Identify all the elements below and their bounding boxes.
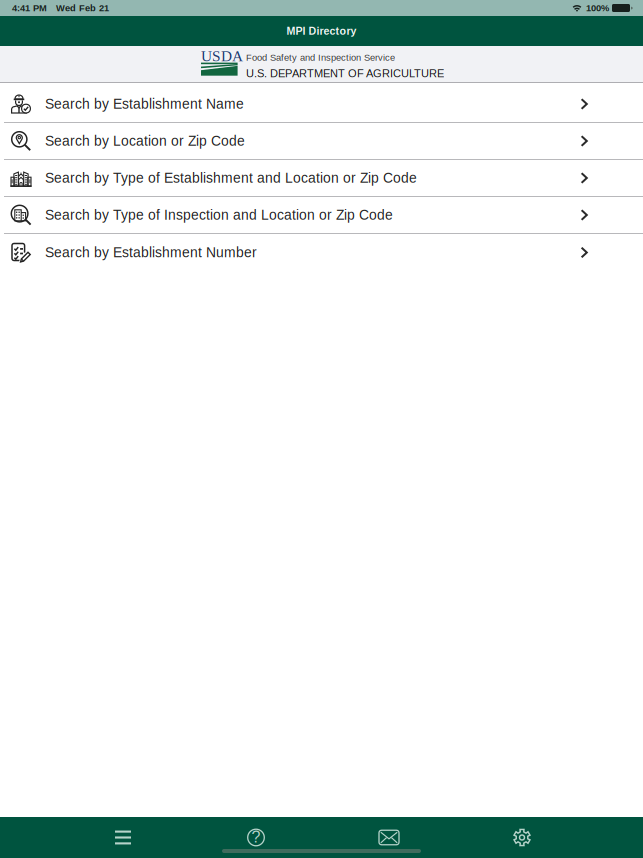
staticText: Search by Type of Inspection and Locatio… [45, 207, 393, 223]
button[interactable]: Contact [322, 817, 455, 858]
staticText: Search by Location or Zip Code [45, 133, 245, 149]
staticText: Food Safety and Inspection Service [246, 52, 395, 63]
staticText: Wed Feb 21 [47, 3, 109, 13]
staticText: U.S. DEPARTMENT OF AGRICULTURE [246, 67, 444, 80]
button[interactable]: Help [189, 817, 322, 858]
button[interactable]: Settings [455, 817, 588, 858]
staticText: 4:41 PM [12, 3, 47, 13]
staticText: ? [251, 828, 260, 846]
button[interactable]: Menu [56, 817, 189, 858]
staticText: Search by Type of Establishment and Loca… [45, 170, 417, 186]
button[interactable]: Search by Type of Inspection and Locatio… [0, 197, 643, 234]
staticText: 100% [583, 3, 612, 13]
staticText: Search by Establishment Name [45, 96, 244, 112]
button[interactable]: Search by Establishment Number [0, 234, 643, 271]
staticText: USDA [201, 47, 243, 64]
button[interactable]: Search by Location or Zip Code [0, 123, 643, 160]
staticText: MPI Directory [286, 25, 356, 37]
staticText: Search by Establishment Number [45, 245, 257, 260]
button[interactable]: Search by Type of Establishment and Loca… [0, 160, 643, 197]
button[interactable]: Search by Establishment Name [0, 86, 643, 123]
